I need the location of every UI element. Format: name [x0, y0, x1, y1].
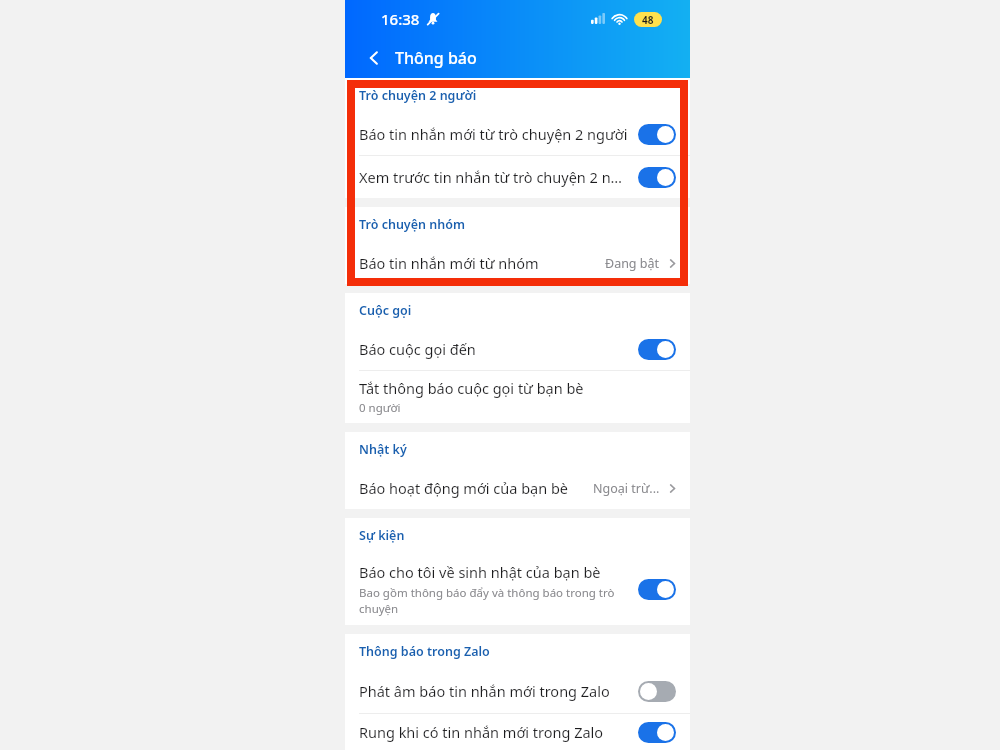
button[interactable]: Báo hoạt động mới của bạn bè [345, 467, 690, 509]
button[interactable]: Báo tin nhắn mới từ nhóm [345, 242, 690, 284]
staticText: Bao gồm thông báo đẩy và thông báo trong… [359, 585, 628, 616]
staticText: Đang bật [605, 255, 660, 272]
staticText: Cuộc gọi [359, 302, 412, 319]
staticText: Sự kiện [359, 527, 405, 544]
button[interactable]: Toggle on [638, 124, 676, 145]
staticText: Báo tin nhắn mới từ nhóm [359, 253, 605, 273]
button[interactable]: Báo tin nhắn mới từ trò chuyện 2 người [345, 113, 690, 155]
staticText: Tắt thông báo cuộc gọi từ bạn bè [359, 378, 584, 398]
staticText: Trò chuyện 2 người [359, 87, 477, 104]
button[interactable]: Phát âm báo tin nhắn mới trong Zalo [345, 669, 690, 713]
button[interactable]: Toggle on [638, 167, 676, 188]
staticText: Nhật ký [359, 441, 407, 458]
staticText: Xem trước tin nhắn từ trò chuyện 2 người [359, 167, 630, 187]
button[interactable]: Back [359, 43, 389, 73]
staticText: Phát âm báo tin nhắn mới trong Zalo [359, 681, 630, 701]
button[interactable]: Xem trước tin nhắn từ trò chuyện 2 người [345, 156, 690, 198]
button[interactable]: Báo cho tôi về sinh nhật của bạn bè [345, 553, 690, 625]
staticText: Báo tin nhắn mới từ trò chuyện 2 người [359, 124, 630, 144]
button[interactable]: Toggle on [638, 579, 676, 600]
button[interactable]: Toggle on [638, 722, 676, 743]
staticText: Báo cuộc gọi đến [359, 339, 630, 359]
staticText: 0 người [359, 400, 401, 416]
staticText: 16:38 [381, 9, 420, 29]
staticText: Ngoại trừ... [593, 480, 660, 497]
staticText: Thông báo trong Zalo [359, 643, 490, 660]
staticText: Trò chuyện nhóm [359, 216, 465, 233]
button[interactable]: Rung khi có tin nhắn mới trong Zalo [345, 714, 690, 750]
staticText: 48 [642, 13, 654, 27]
button[interactable]: Tắt thông báo cuộc gọi từ bạn bè [345, 371, 690, 423]
staticText: Báo cho tôi về sinh nhật của bạn bè [359, 562, 601, 582]
staticText: Rung khi có tin nhắn mới trong Zalo [359, 722, 630, 742]
staticText: Báo hoạt động mới của bạn bè [359, 478, 593, 498]
button[interactable]: Toggle on [638, 339, 676, 360]
staticText: Thông báo [395, 47, 477, 69]
button[interactable]: Toggle off [638, 681, 676, 702]
button[interactable]: Báo cuộc gọi đến [345, 328, 690, 370]
